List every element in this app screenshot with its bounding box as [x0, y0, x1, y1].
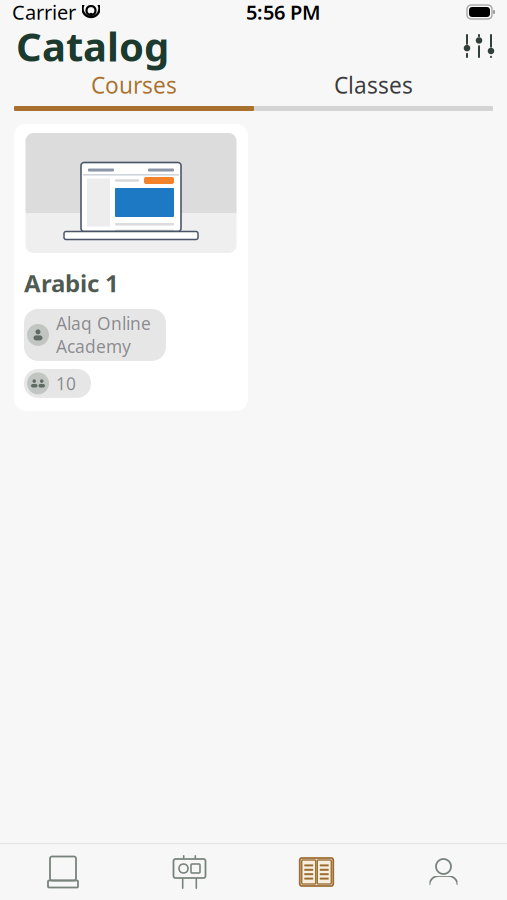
button[interactable]: Filter [457, 24, 501, 68]
button[interactable]: Classes [254, 68, 493, 102]
button[interactable]: Lessons [126, 844, 253, 900]
staticText: Arabic 1 [24, 267, 119, 299]
button[interactable]: Profile [380, 844, 507, 900]
staticText: Carrier [12, 0, 76, 25]
staticText: Courses [91, 70, 177, 100]
button[interactable]: Arabic 1 [14, 124, 248, 411]
staticText: 5:56 PM [246, 0, 321, 25]
staticText: Classes [334, 70, 413, 100]
button[interactable]: Catalog [253, 844, 380, 900]
staticText: Alaq Online Academy [56, 312, 151, 358]
button[interactable]: Library [0, 844, 126, 900]
button[interactable]: Courses [14, 68, 254, 102]
staticText: Catalog [16, 19, 169, 72]
staticText: 10 [56, 372, 76, 395]
